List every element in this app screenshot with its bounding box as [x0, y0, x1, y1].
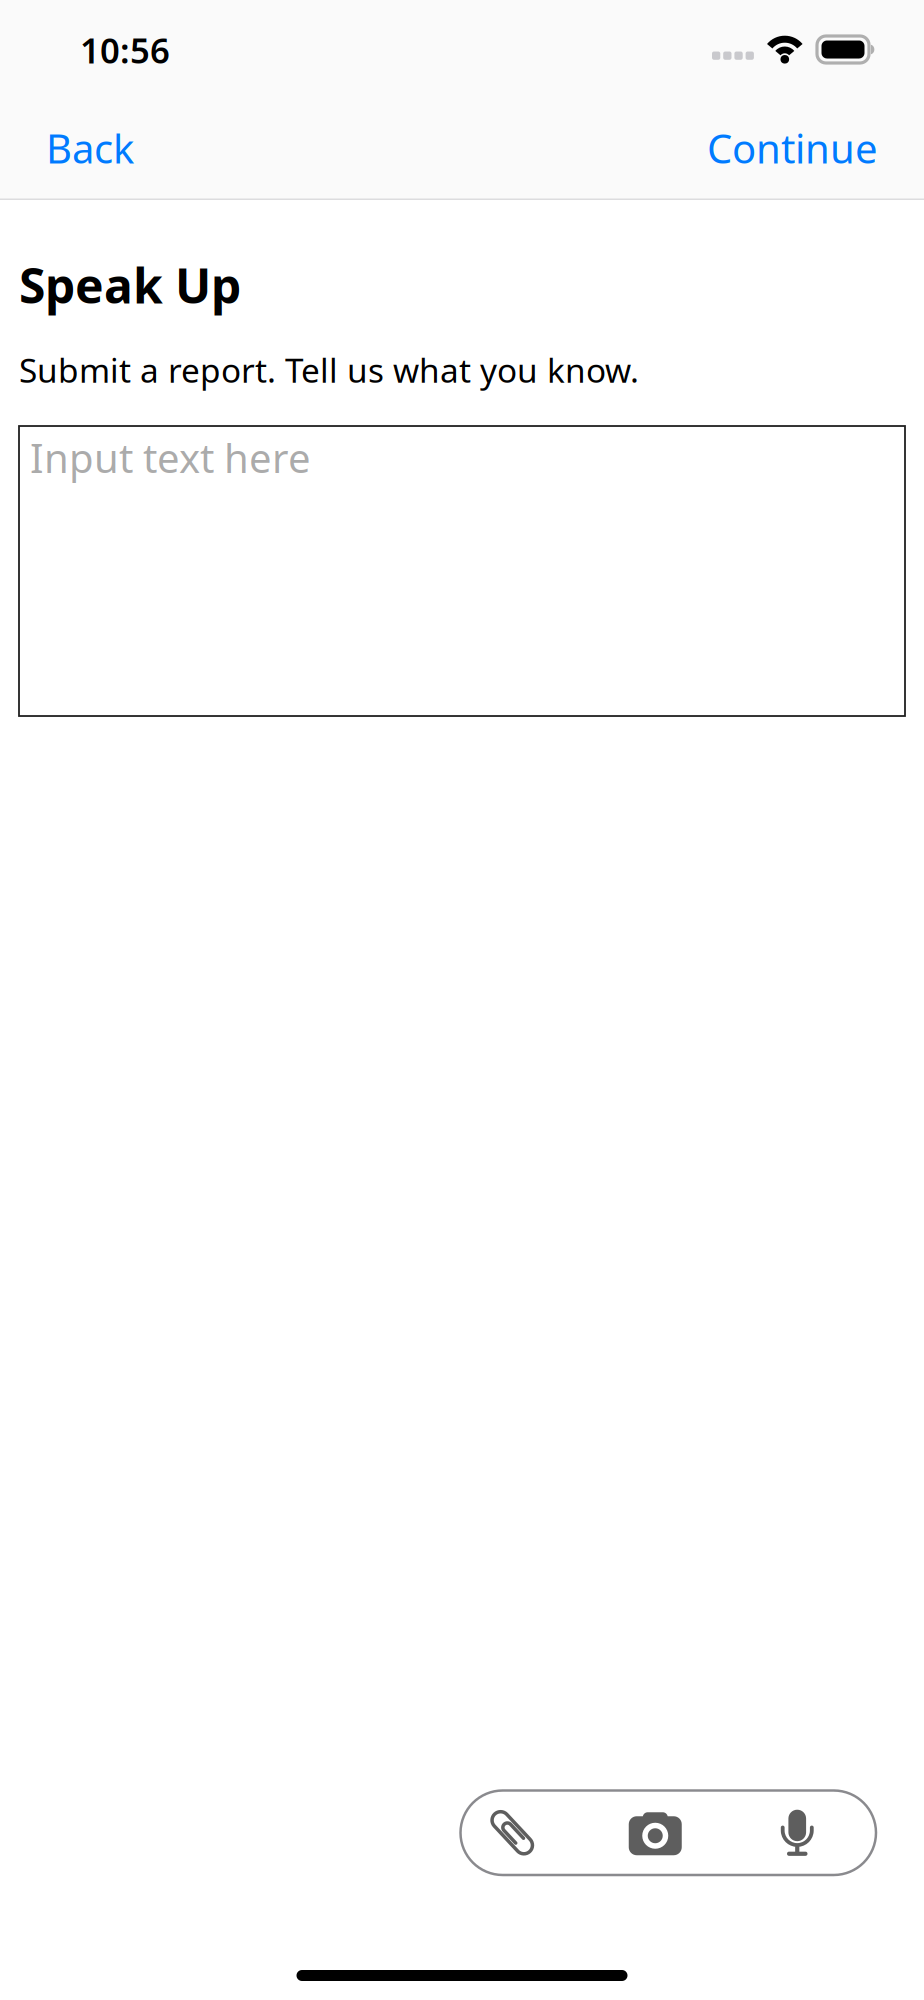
staticText: Input text here — [30, 431, 311, 484]
button[interactable]: Take photo — [589, 1789, 721, 1876]
button[interactable]: Attach file — [446, 1789, 578, 1876]
button[interactable]: Back — [24, 105, 156, 190]
staticText: Submit a report. Tell us what you know. — [19, 348, 639, 392]
button[interactable]: Record audio — [731, 1789, 863, 1876]
staticText: Continue — [707, 121, 878, 174]
staticText: Speak Up — [19, 253, 241, 317]
button[interactable]: Continue — [685, 105, 900, 190]
staticText: Back — [46, 121, 134, 174]
staticText: 10:56 — [80, 27, 170, 73]
